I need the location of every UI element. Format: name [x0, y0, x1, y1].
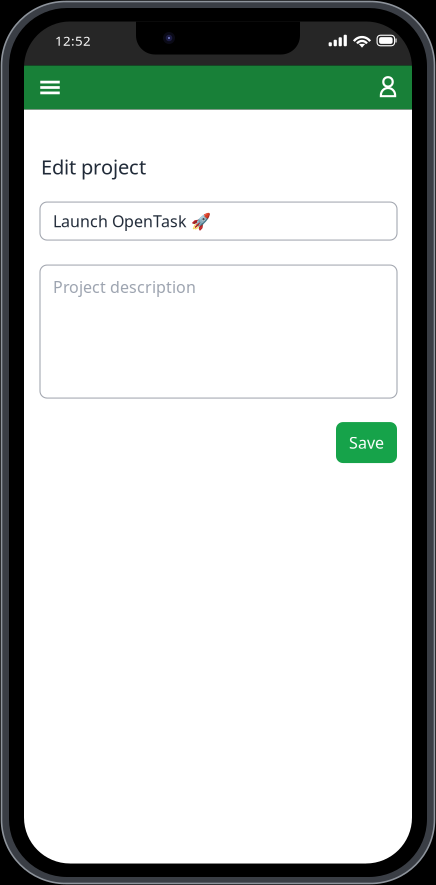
- staticText: 12:52: [55, 32, 91, 49]
- button[interactable]: Launch OpenTask 🚀: [40, 202, 397, 240]
- button[interactable]: Save: [336, 422, 397, 463]
- staticText: Project description: [53, 276, 196, 297]
- button[interactable]: Account: [366, 65, 410, 109]
- button[interactable]: Project description: [40, 265, 397, 398]
- staticText: Edit project: [41, 153, 146, 180]
- button[interactable]: Menu: [28, 65, 72, 109]
- staticText: Save: [349, 432, 384, 453]
- staticText: Launch OpenTask 🚀: [53, 210, 211, 232]
